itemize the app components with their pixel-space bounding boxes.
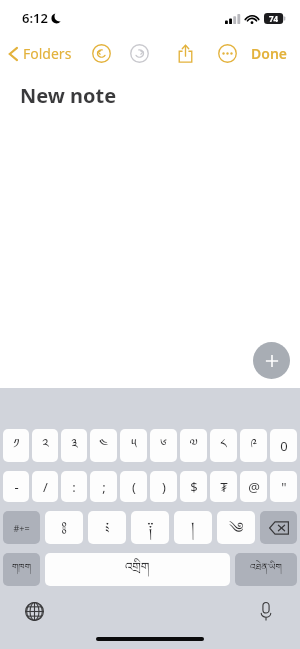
staticText: : bbox=[72, 478, 76, 496]
staticText: 0 bbox=[280, 437, 288, 455]
button[interactable]: ༩ bbox=[240, 429, 267, 462]
button[interactable]: ༣ bbox=[61, 429, 87, 462]
button[interactable]: Dictate bbox=[254, 599, 278, 623]
button[interactable]: " bbox=[270, 471, 297, 502]
button[interactable]: ༢ bbox=[32, 429, 58, 462]
button[interactable]: ༔ bbox=[45, 511, 83, 544]
staticText: #+= bbox=[13, 522, 30, 534]
button[interactable]: ༥ bbox=[120, 429, 147, 462]
staticText: ༴ bbox=[105, 511, 110, 544]
button[interactable]: ( bbox=[120, 471, 147, 502]
button[interactable]: #+= bbox=[3, 511, 40, 544]
button[interactable]: Folders bbox=[8, 44, 72, 63]
button[interactable]: འགྲིག bbox=[45, 553, 230, 586]
button[interactable]: ༄ bbox=[217, 511, 255, 544]
staticText: / bbox=[43, 478, 48, 496]
staticText: $ bbox=[190, 478, 198, 496]
staticText: Done bbox=[251, 44, 288, 63]
staticText: New note bbox=[20, 82, 117, 109]
staticText: ༤ bbox=[99, 429, 108, 462]
staticText: ། bbox=[191, 511, 195, 544]
button[interactable]: More options bbox=[216, 42, 238, 64]
button[interactable]: / bbox=[32, 471, 58, 502]
staticText: ; bbox=[102, 478, 106, 496]
button[interactable]: འཐེན་ཡིག bbox=[235, 553, 297, 586]
button[interactable]: ༑ bbox=[131, 511, 169, 544]
button[interactable]: Share bbox=[174, 42, 196, 64]
staticText: Folders bbox=[23, 44, 72, 63]
button[interactable]: Redo bbox=[128, 42, 150, 64]
button[interactable]: ༧ bbox=[180, 429, 207, 462]
staticText: ( bbox=[132, 478, 136, 496]
staticText: @ bbox=[248, 478, 260, 496]
staticText: ༑ bbox=[147, 511, 154, 544]
button[interactable]: ₮ bbox=[210, 471, 237, 502]
button[interactable]: གཁག bbox=[3, 553, 40, 586]
staticText: ₮ bbox=[220, 478, 228, 496]
staticText: 74 bbox=[269, 13, 279, 24]
staticText: ༢ bbox=[42, 429, 49, 462]
button[interactable]: Undo bbox=[90, 42, 112, 64]
button[interactable]: ༦ bbox=[150, 429, 177, 462]
button[interactable]: ༴ bbox=[88, 511, 126, 544]
button[interactable]: ། bbox=[174, 511, 212, 544]
button[interactable]: ༤ bbox=[90, 429, 117, 462]
staticText: འགྲིག bbox=[125, 553, 150, 586]
staticText: ) bbox=[162, 478, 166, 496]
button[interactable]: : bbox=[61, 471, 87, 502]
button[interactable]: Done bbox=[251, 44, 288, 63]
button[interactable]: Change keyboard bbox=[22, 599, 46, 623]
staticText: ༧ bbox=[189, 429, 198, 462]
button[interactable]: Backspace bbox=[260, 511, 297, 544]
button[interactable]: Add attachment bbox=[253, 342, 290, 379]
staticText: ༣ bbox=[71, 429, 78, 462]
staticText: ༡ bbox=[13, 429, 20, 462]
staticText: 6:12 bbox=[22, 9, 48, 27]
staticText: ༔ bbox=[61, 511, 67, 544]
button[interactable]: ༡ bbox=[3, 429, 29, 462]
button[interactable]: ; bbox=[90, 471, 117, 502]
staticText: ༥ bbox=[131, 429, 137, 462]
staticText: ༄ bbox=[229, 511, 244, 544]
staticText: ༦ bbox=[160, 429, 167, 462]
button[interactable]: 0 bbox=[270, 429, 297, 462]
staticText: ༨ bbox=[220, 429, 227, 462]
button[interactable]: @ bbox=[240, 471, 267, 502]
staticText: ༩ bbox=[250, 429, 257, 462]
button[interactable]: ) bbox=[150, 471, 177, 502]
staticText: འཐེན་ཡིག bbox=[250, 557, 282, 582]
button[interactable]: - bbox=[3, 471, 29, 502]
staticText: གཁག bbox=[12, 557, 31, 582]
button[interactable]: $ bbox=[180, 471, 207, 502]
staticText: - bbox=[14, 478, 19, 496]
staticText: " bbox=[281, 478, 287, 496]
button[interactable]: ༨ bbox=[210, 429, 237, 462]
